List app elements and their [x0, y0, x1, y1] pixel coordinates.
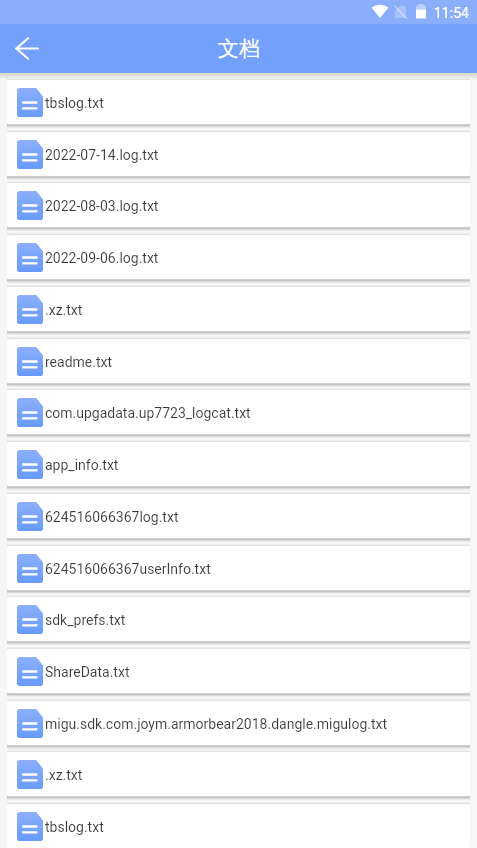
staticText: 文档 — [218, 36, 260, 62]
button[interactable]: 2022-07-14.log.txt — [7, 132, 470, 176]
staticText: tbslog.txt — [45, 819, 104, 835]
staticText: 11:54 — [434, 5, 469, 21]
button[interactable]: migu.sdk.com.joym.armorbear2018.dangle.m… — [7, 701, 470, 745]
staticText: app_info.txt — [45, 457, 119, 473]
button[interactable]: tbslog.txt — [7, 80, 470, 124]
button[interactable]: 624516066367log.txt — [7, 494, 470, 538]
button[interactable]: 624516066367userInfo.txt — [7, 546, 470, 590]
staticText: migu.sdk.com.joym.armorbear2018.dangle.m… — [45, 716, 388, 732]
staticText: 624516066367log.txt — [45, 509, 179, 525]
button[interactable]: 2022-09-06.log.txt — [7, 235, 470, 279]
staticText: .xz.txt — [45, 302, 83, 318]
staticText: sdk_prefs.txt — [45, 612, 126, 628]
staticText: ShareData.txt — [45, 664, 130, 680]
button[interactable]: sdk_prefs.txt — [7, 597, 470, 641]
staticText: 2022-07-14.log.txt — [45, 147, 159, 163]
staticText: readme.txt — [45, 354, 113, 370]
button[interactable]: Back — [0, 24, 50, 73]
button[interactable]: readme.txt — [7, 339, 470, 383]
staticText: 624516066367userInfo.txt — [45, 561, 211, 577]
staticText: tbslog.txt — [45, 95, 104, 111]
staticText: 2022-09-06.log.txt — [45, 250, 159, 266]
staticText: 2022-08-03.log.txt — [45, 198, 159, 214]
button[interactable]: app_info.txt — [7, 442, 470, 486]
staticText: com.upgadata.up7723_logcat.txt — [45, 405, 251, 421]
button[interactable]: com.upgadata.up7723_logcat.txt — [7, 390, 470, 434]
button[interactable]: 2022-08-03.log.txt — [7, 183, 470, 227]
button[interactable]: .xz.txt — [7, 752, 470, 796]
button[interactable]: .xz.txt — [7, 287, 470, 331]
button[interactable]: ShareData.txt — [7, 649, 470, 693]
staticText: .xz.txt — [45, 767, 83, 783]
button[interactable]: tbslog.txt — [7, 804, 470, 848]
